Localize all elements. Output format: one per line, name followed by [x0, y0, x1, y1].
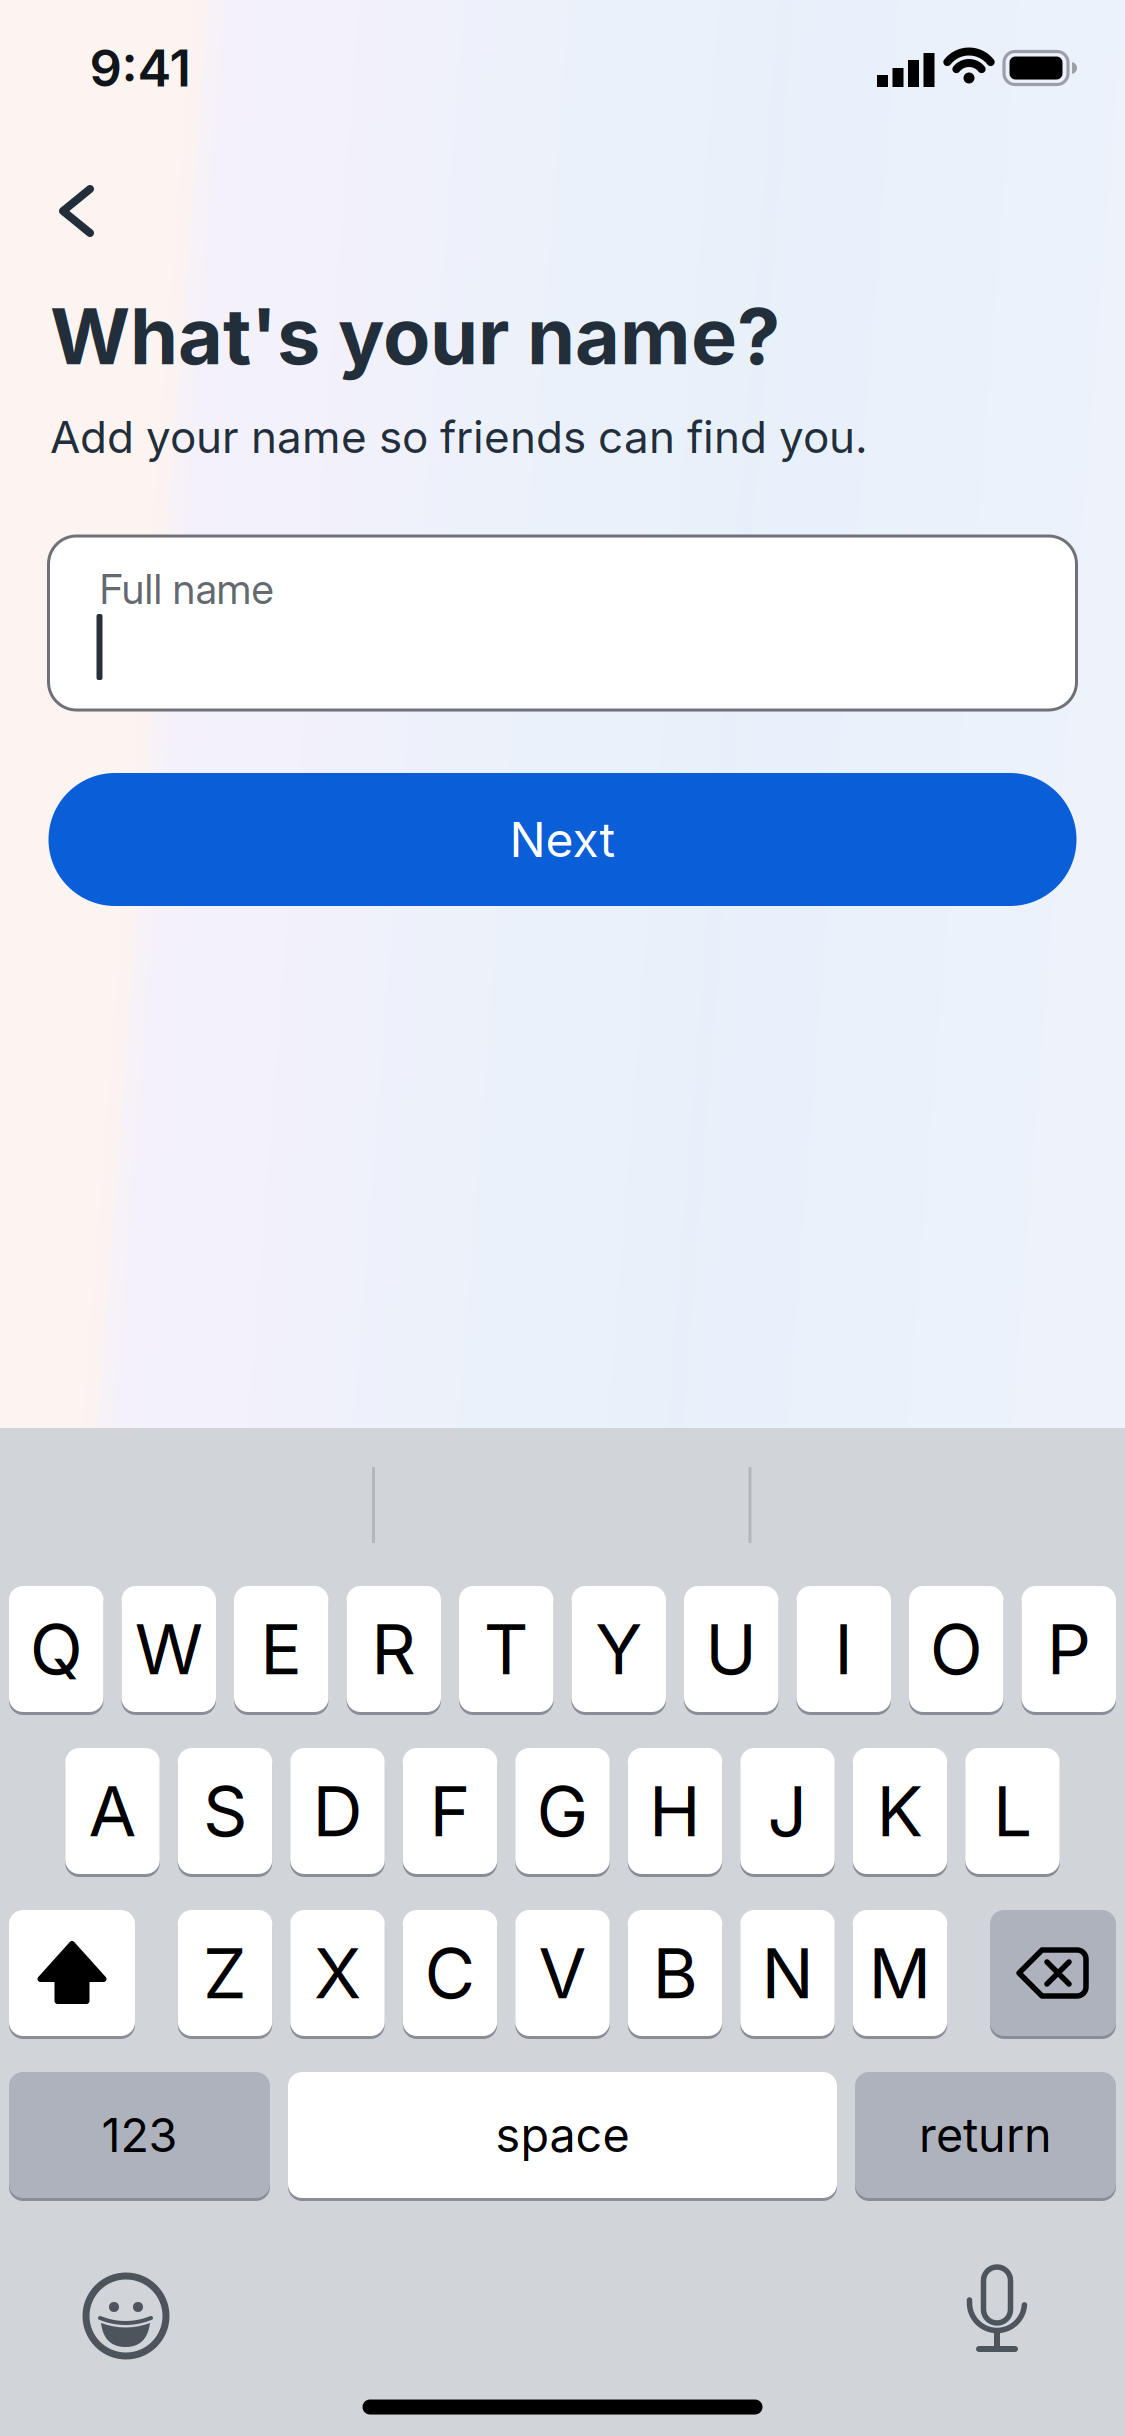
button[interactable]: G — [515, 1746, 610, 1875]
button[interactable]: space — [288, 2070, 837, 2199]
staticText: P — [1047, 1608, 1091, 1690]
button[interactable]: W — [121, 1584, 216, 1713]
button[interactable]: P — [1021, 1584, 1116, 1713]
staticText: Full name — [99, 565, 273, 613]
button[interactable]: Next — [48, 773, 1076, 906]
staticText: return — [919, 2107, 1052, 2163]
button[interactable]: R — [346, 1584, 441, 1713]
staticText: A — [88, 1770, 136, 1852]
button[interactable] — [9, 1908, 135, 2037]
staticText: I — [834, 1608, 853, 1690]
staticText: T — [484, 1608, 529, 1690]
staticText: space — [495, 2107, 629, 2163]
staticText: M — [868, 1932, 931, 2014]
button[interactable]: 123 — [9, 2070, 270, 2199]
staticText: U — [705, 1608, 757, 1690]
staticText: Add your name so friends can find you. — [50, 411, 868, 463]
button[interactable]: E — [234, 1584, 328, 1713]
button[interactable]: N — [740, 1908, 835, 2037]
staticText: Q — [30, 1608, 83, 1690]
staticText: Next — [509, 811, 615, 868]
staticText: 123 — [101, 2107, 177, 2163]
button[interactable]: return — [855, 2070, 1116, 2199]
button[interactable]: B — [628, 1908, 722, 2037]
staticText: What's your name? — [50, 290, 780, 382]
button[interactable]: L — [965, 1746, 1060, 1875]
button[interactable]: Q — [9, 1584, 103, 1713]
button[interactable]: M — [853, 1908, 947, 2037]
button[interactable]: Z — [178, 1908, 272, 2037]
staticText: S — [203, 1770, 247, 1852]
staticText: O — [930, 1608, 983, 1690]
staticText: X — [314, 1932, 361, 2014]
staticText: J — [767, 1770, 807, 1852]
button[interactable]: T — [459, 1584, 553, 1713]
staticText: C — [424, 1932, 475, 2014]
button[interactable] — [947, 2264, 1047, 2364]
button[interactable]: Y — [571, 1584, 666, 1713]
staticText: K — [876, 1770, 923, 1852]
button[interactable]: H — [628, 1746, 722, 1875]
staticText: B — [652, 1932, 697, 2014]
staticText: D — [312, 1770, 362, 1852]
staticText: L — [993, 1770, 1032, 1852]
button[interactable]: V — [515, 1908, 610, 2037]
staticText: 9:41 — [89, 38, 190, 98]
button[interactable]: S — [178, 1746, 272, 1875]
staticText: E — [260, 1608, 302, 1690]
staticText: H — [649, 1770, 701, 1852]
staticText: G — [536, 1770, 588, 1852]
button[interactable] — [990, 1908, 1116, 2037]
staticText: N — [761, 1932, 813, 2014]
staticText: F — [429, 1770, 470, 1852]
button[interactable]: I — [796, 1584, 891, 1713]
button[interactable]: J — [740, 1746, 835, 1875]
button[interactable]: C — [403, 1908, 497, 2037]
button[interactable] — [0, 0, 150, 420]
staticText: Z — [203, 1932, 247, 2014]
button[interactable]: K — [853, 1746, 947, 1875]
button[interactable] — [76, 2266, 176, 2366]
staticText: V — [538, 1932, 586, 2014]
staticText: W — [135, 1608, 203, 1690]
button[interactable]: A — [65, 1746, 160, 1875]
button[interactable]: X — [290, 1908, 385, 2037]
button[interactable]: Full name — [48, 536, 1076, 710]
staticText: R — [371, 1608, 416, 1690]
button[interactable]: O — [909, 1584, 1003, 1713]
button[interactable]: U — [684, 1584, 778, 1713]
button[interactable]: F — [403, 1746, 497, 1875]
staticText: Y — [595, 1608, 642, 1690]
button[interactable]: D — [290, 1746, 385, 1875]
